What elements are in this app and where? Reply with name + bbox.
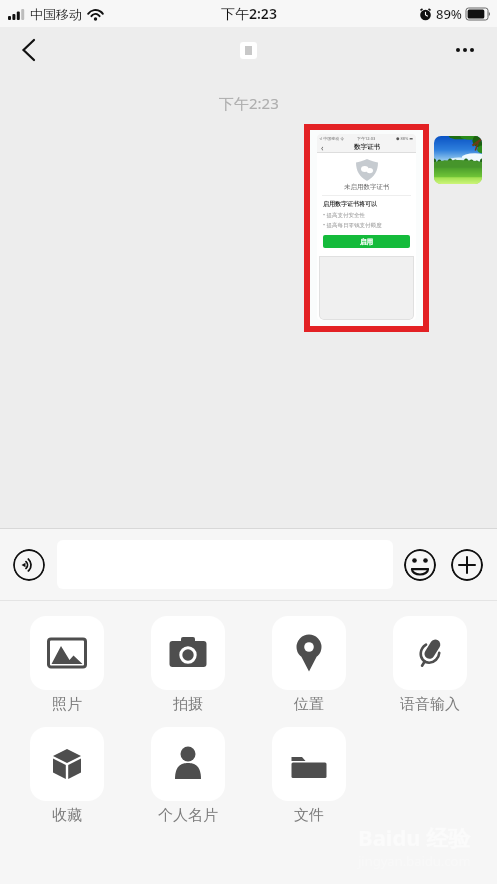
- staticText: 位置: [294, 695, 324, 714]
- staticText: 89%: [436, 5, 462, 23]
- staticText: 启用数字证书将可以: [323, 200, 377, 208]
- button[interactable]: [404, 549, 436, 581]
- staticText: 语音输入: [400, 695, 460, 714]
- button[interactable]: [240, 42, 257, 59]
- staticText: 启用: [360, 238, 373, 246]
- button[interactable]: [13, 549, 45, 581]
- button[interactable]: [451, 549, 483, 581]
- button[interactable]: 语音输入: [393, 616, 467, 714]
- button[interactable]: [447, 32, 483, 68]
- button[interactable]: 个人名片: [151, 727, 225, 825]
- staticText: 拍摄: [173, 695, 203, 714]
- button[interactable]: 照片: [30, 616, 104, 714]
- staticText: 下午2:23: [219, 93, 279, 113]
- staticText: ‹: [321, 142, 324, 152]
- staticText: ·ıl 中国移动 令: [319, 136, 345, 141]
- button[interactable]: 文件: [272, 727, 346, 825]
- staticText: 下午12:03: [357, 136, 376, 141]
- staticText: 下午2:23: [221, 4, 277, 23]
- button[interactable]: [10, 32, 46, 68]
- staticText: 个人名片: [158, 806, 218, 825]
- button[interactable]: ·ıl 中国移动 令: [310, 130, 423, 326]
- staticText: 照片: [52, 695, 82, 714]
- staticText: • 提高每日零钱支付额度: [323, 221, 382, 229]
- staticText: 收藏: [52, 806, 82, 825]
- staticText: 文件: [294, 806, 324, 825]
- button[interactable]: 位置: [272, 616, 346, 714]
- button[interactable]: 拍摄: [151, 616, 225, 714]
- staticText: 未启用数字证书: [344, 183, 390, 191]
- button[interactable]: [434, 136, 482, 184]
- staticText: • 提高支付安全性: [323, 211, 365, 219]
- staticText: 中国移动: [30, 6, 82, 22]
- button[interactable]: 收藏: [30, 727, 104, 825]
- staticText: ● 88% ▬: [396, 136, 414, 141]
- staticText: 数字证书: [354, 143, 380, 151]
